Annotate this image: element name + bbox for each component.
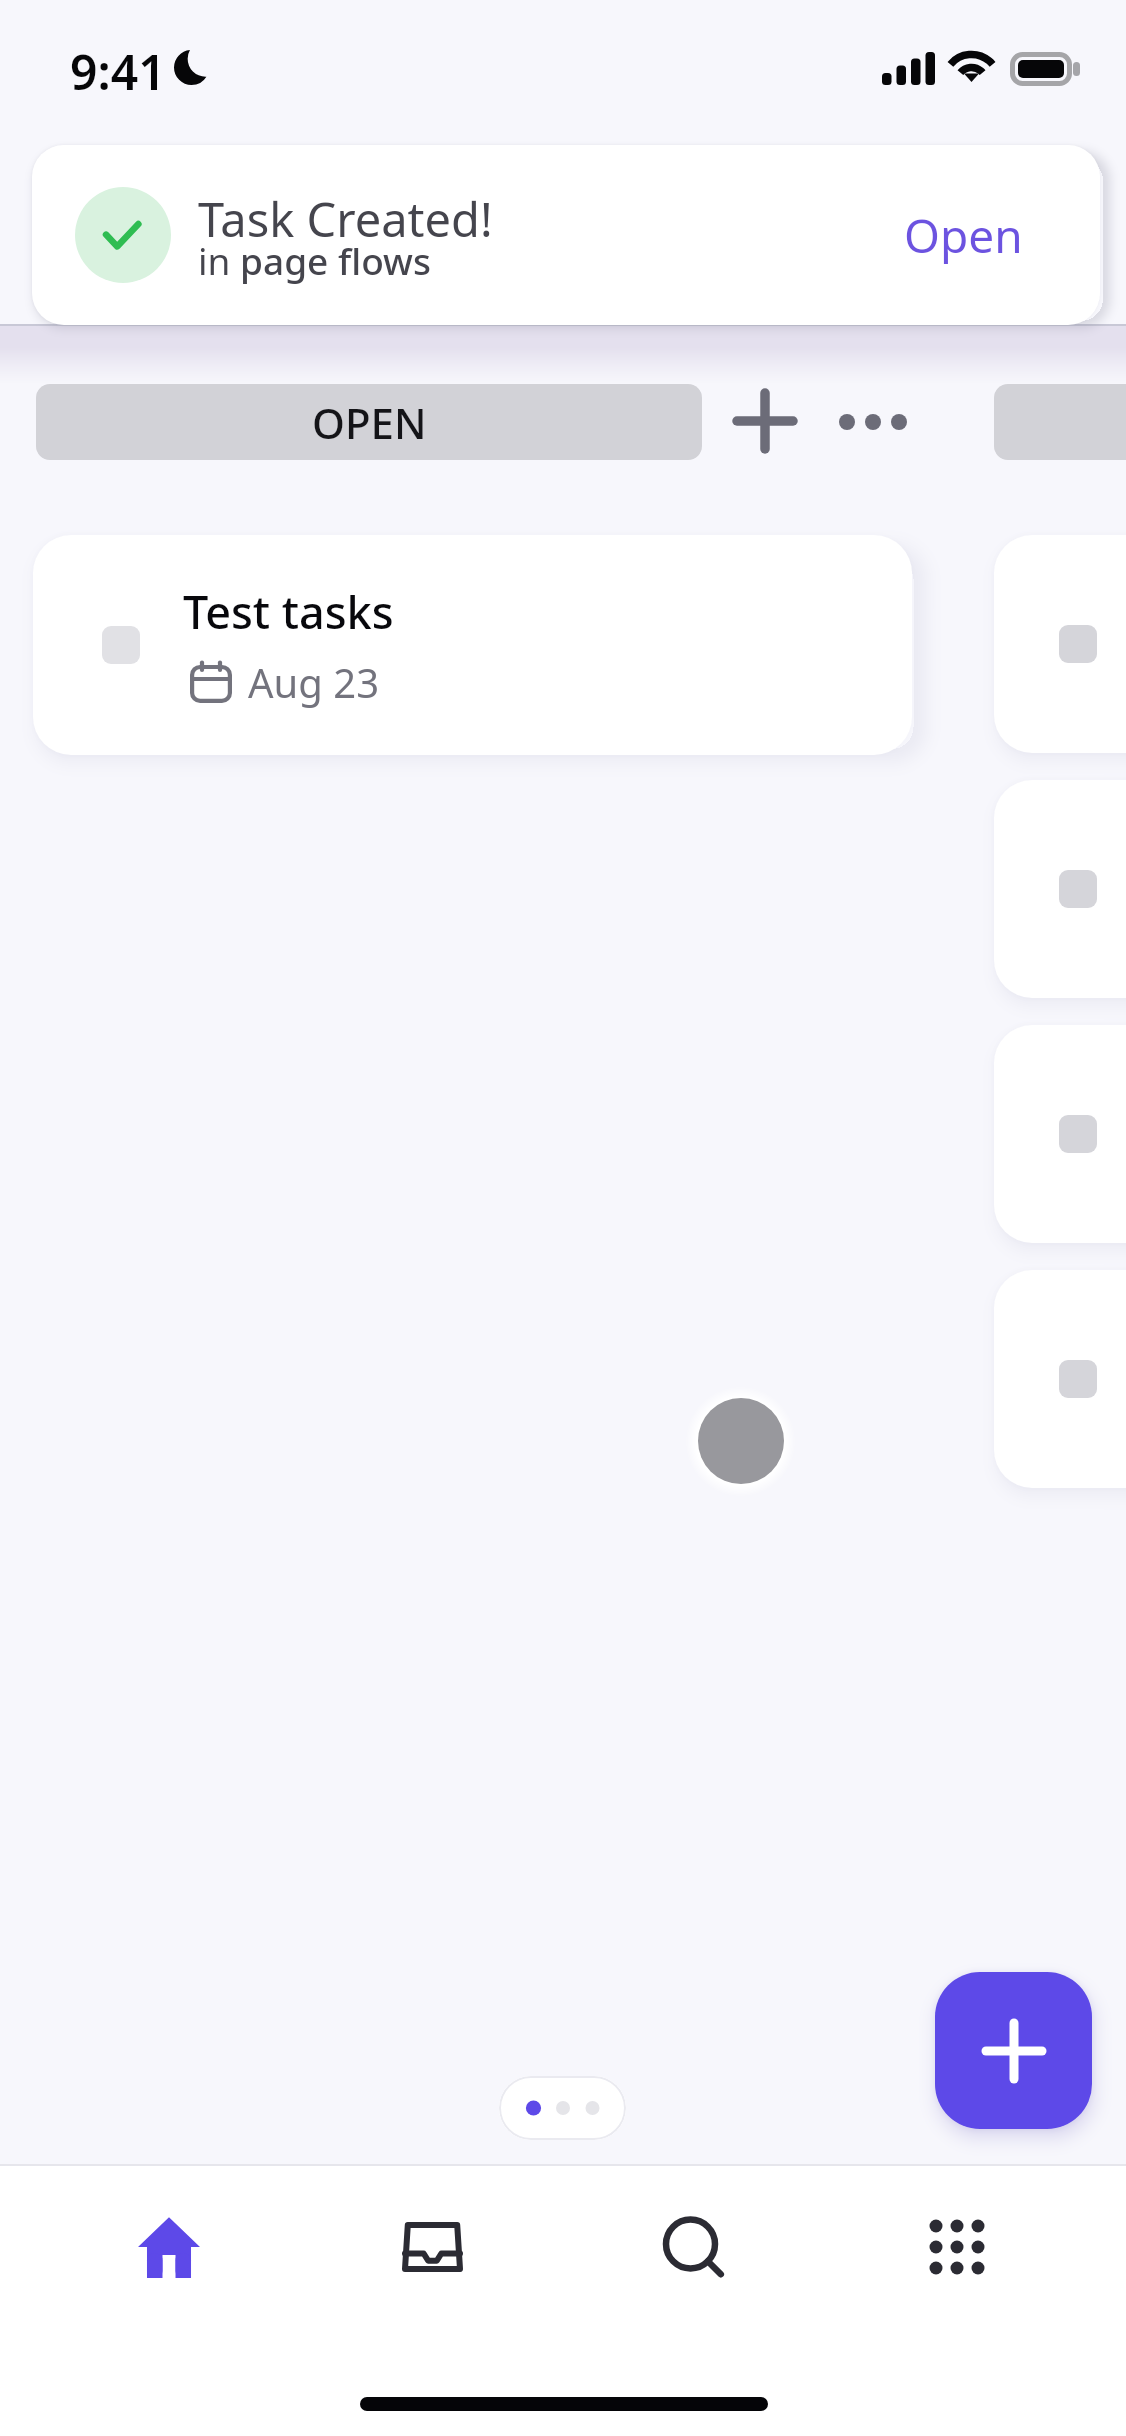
button[interactable]: Add list (727, 383, 803, 459)
staticText: Aug 23 (248, 655, 380, 709)
staticText: Task Created! (198, 187, 493, 251)
staticText: 9:41 (70, 39, 166, 104)
button[interactable]: Search (563, 2175, 825, 2319)
button[interactable] (994, 780, 1126, 998)
button[interactable] (994, 384, 1126, 460)
button[interactable]: Open (880, 175, 1046, 295)
button[interactable]: Test tasks (33, 535, 912, 755)
button[interactable] (994, 1270, 1126, 1488)
button[interactable]: Task Created! (32, 145, 1100, 325)
button[interactable]: Create task (935, 1972, 1092, 2129)
staticText: in page flows (198, 235, 431, 285)
button[interactable]: Home (38, 2175, 300, 2319)
staticText: Test tasks (183, 581, 394, 642)
button[interactable]: Apps (826, 2175, 1088, 2319)
staticText: OPEN (312, 394, 427, 451)
button[interactable]: Page indicator (499, 2076, 626, 2140)
button[interactable]: More options (834, 383, 912, 461)
staticText: Open (904, 204, 1023, 267)
button[interactable] (994, 1025, 1126, 1243)
button[interactable]: OPEN (36, 384, 702, 460)
button[interactable]: Inbox (301, 2175, 563, 2319)
button[interactable] (994, 535, 1126, 753)
